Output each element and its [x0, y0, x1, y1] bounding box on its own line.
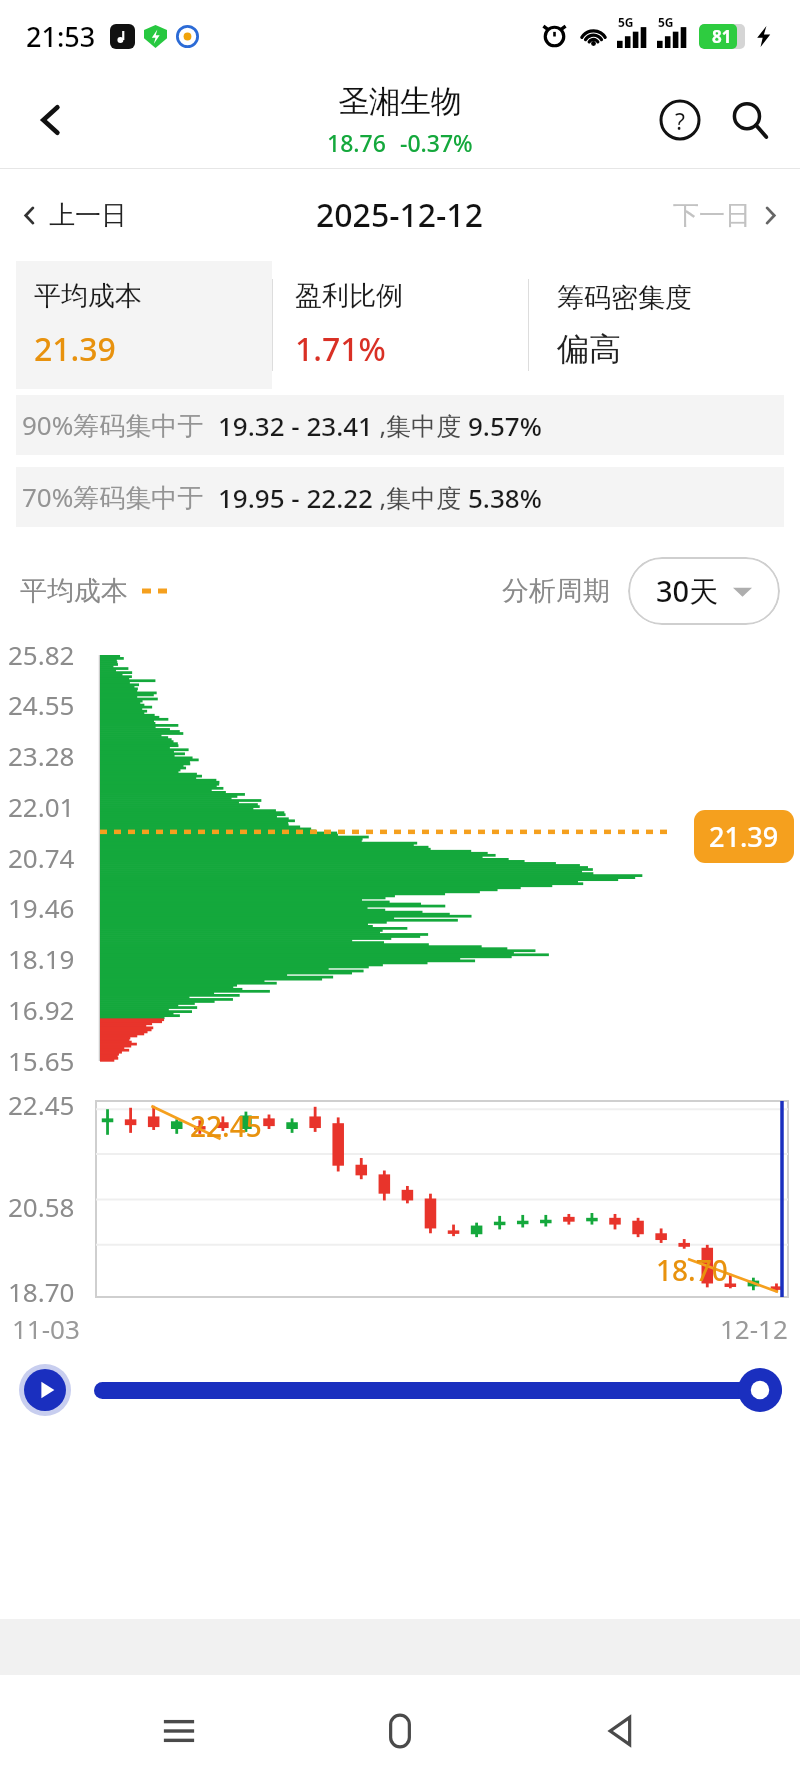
- staticText: 21:53: [26, 18, 96, 55]
- button[interactable]: Recents: [137, 1689, 221, 1773]
- staticText: 18.76: [327, 127, 386, 158]
- staticText: 平均成本: [20, 574, 128, 608]
- staticText: 12-12: [720, 1311, 788, 1346]
- staticText: 90%筹码集中于: [22, 407, 204, 443]
- button[interactable]: Slider handle: [738, 1368, 782, 1412]
- staticText: 分析周期: [502, 574, 610, 608]
- staticText: 21.39: [709, 818, 779, 855]
- button[interactable]: Play: [18, 1363, 72, 1417]
- staticText: 19.32 - 23.41: [218, 408, 373, 443]
- button[interactable]: Home: [358, 1689, 442, 1773]
- staticText: 18.70: [656, 1251, 728, 1289]
- button[interactable]: 30天: [628, 557, 780, 625]
- staticText: ,集中度: [373, 480, 468, 514]
- staticText: 70%筹码集中于: [22, 479, 204, 515]
- staticText: 81: [712, 25, 732, 48]
- staticText: 5G: [618, 14, 634, 30]
- staticText: 5.38%: [468, 480, 542, 515]
- staticText: 下一日: [673, 199, 751, 232]
- staticText: 9.57%: [468, 408, 542, 443]
- staticText: 18.70: [8, 1274, 75, 1309]
- staticText: 22.45: [8, 1087, 75, 1122]
- staticText: 16.92: [8, 992, 75, 1027]
- staticText: 11-03: [12, 1311, 80, 1346]
- staticText: 筹码密集度: [557, 281, 692, 315]
- staticText: 23.28: [8, 738, 75, 773]
- staticText: 20.74: [8, 840, 75, 875]
- staticText: 20.58: [8, 1189, 75, 1224]
- staticText: 25.82: [8, 637, 75, 672]
- staticText: 30天: [656, 571, 719, 611]
- button[interactable]: 上一日: [16, 195, 131, 236]
- staticText: 1.71%: [295, 327, 386, 371]
- staticText: 偏高: [557, 329, 621, 369]
- staticText: 22.45: [190, 1107, 262, 1145]
- button[interactable]: Help: [652, 92, 708, 148]
- staticText: 圣湘生物: [338, 82, 462, 121]
- staticText: 18.19: [8, 941, 75, 976]
- button[interactable]: 下一日: [669, 195, 784, 236]
- button[interactable]: Back: [579, 1689, 663, 1773]
- staticText: 21.39: [34, 327, 116, 371]
- staticText: 平均成本: [34, 279, 142, 313]
- staticText: 15.65: [8, 1043, 75, 1078]
- staticText: ,集中度: [373, 408, 468, 442]
- button[interactable]: Back: [22, 91, 80, 149]
- staticText: 24.55: [8, 687, 75, 722]
- staticText: ?: [675, 105, 685, 136]
- staticText: 22.01: [8, 789, 75, 824]
- staticText: 2025-12-12: [316, 193, 483, 237]
- staticText: -0.37%: [400, 127, 473, 158]
- button[interactable]: Search: [722, 92, 778, 148]
- staticText: 5G: [658, 14, 674, 30]
- staticText: 19.95 - 22.22: [218, 480, 373, 515]
- staticText: 上一日: [49, 199, 127, 232]
- staticText: 19.46: [8, 890, 75, 925]
- staticText: 盈利比例: [295, 279, 403, 313]
- button[interactable]: [94, 1382, 782, 1399]
